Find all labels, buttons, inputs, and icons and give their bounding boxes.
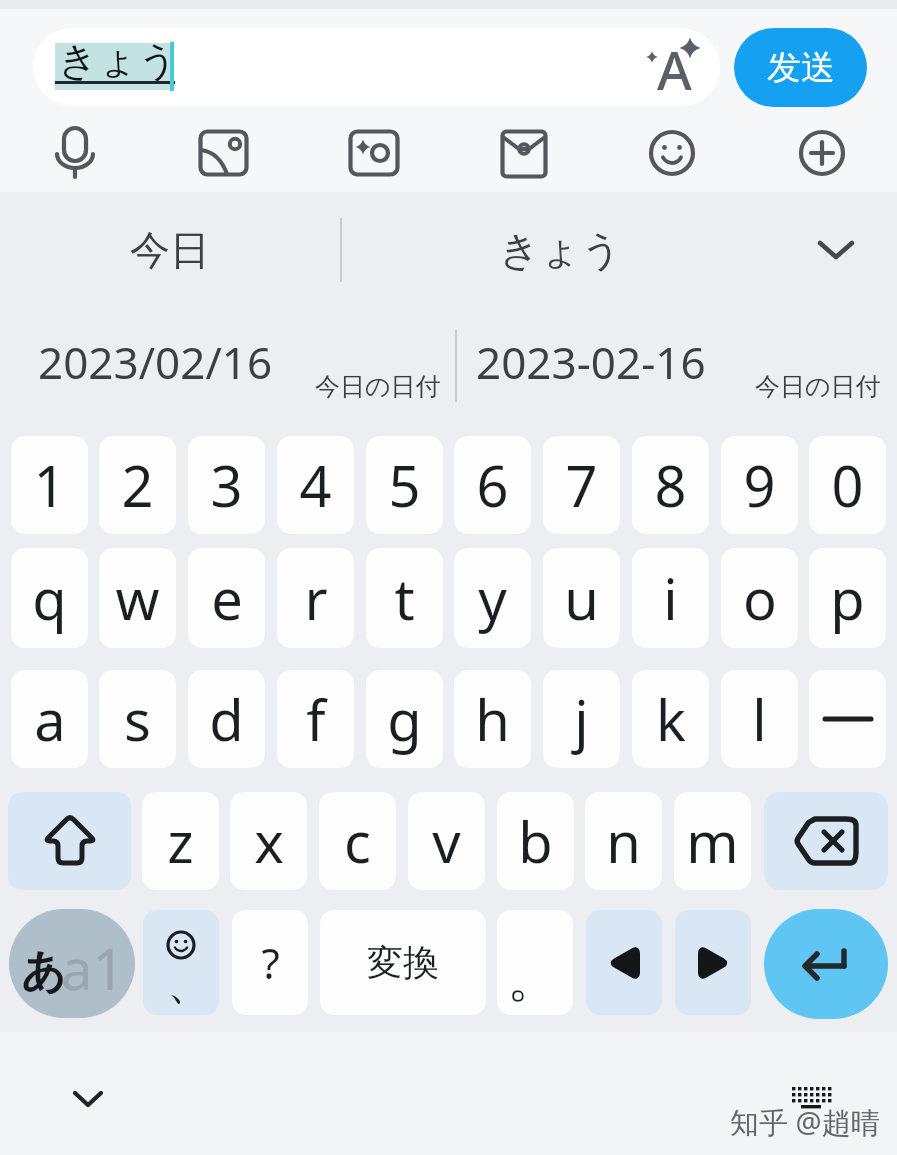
button[interactable]: t [366, 548, 443, 648]
staticText: l [752, 681, 767, 757]
button[interactable]: m [674, 792, 751, 890]
staticText: ? [261, 934, 280, 991]
button[interactable] [496, 126, 552, 180]
staticText: b [518, 803, 553, 879]
button[interactable]: n [585, 792, 662, 890]
button[interactable] [809, 670, 886, 768]
button[interactable]: 8 [632, 436, 709, 534]
staticText: y [478, 560, 507, 636]
button[interactable]: 4 [277, 436, 354, 534]
button[interactable]: p [809, 548, 886, 648]
button[interactable] [764, 792, 888, 890]
staticText: k [656, 681, 686, 757]
staticText: c [344, 803, 371, 879]
button[interactable]: きょう [420, 205, 700, 295]
button[interactable] [764, 909, 888, 1019]
button[interactable]: r [277, 548, 354, 648]
staticText: 3 [210, 447, 243, 523]
staticText: a1 [61, 930, 125, 1006]
staticText: 6 [476, 447, 509, 523]
button[interactable] [780, 1075, 840, 1115]
staticText: t [394, 560, 415, 636]
staticText: 今日の日付 [315, 371, 441, 402]
staticText: 。 [507, 946, 559, 1012]
button[interactable]: 6 [454, 436, 531, 534]
staticText: 9 [743, 447, 776, 523]
button[interactable]: 2 [99, 436, 176, 534]
button[interactable]: g [366, 670, 443, 768]
staticText: j [574, 681, 589, 757]
button[interactable]: s [99, 670, 176, 768]
button[interactable] [800, 215, 870, 285]
button[interactable]: 変換 [320, 910, 486, 1015]
button[interactable] [344, 126, 404, 180]
button[interactable] [675, 910, 751, 1015]
button[interactable]: 今日 [30, 205, 310, 295]
staticText: q [32, 560, 67, 636]
button[interactable]: 3 [188, 436, 265, 534]
staticText: あ [21, 944, 67, 999]
staticText: i [663, 560, 678, 636]
button[interactable]: a [11, 670, 88, 768]
button[interactable]: h [454, 670, 531, 768]
staticText: w [115, 560, 160, 636]
button[interactable]: v [408, 792, 485, 890]
button[interactable] [586, 910, 662, 1015]
staticText: d [209, 681, 244, 757]
staticText: きょう [58, 36, 178, 85]
staticText: 4 [299, 447, 332, 523]
button[interactable]: j [543, 670, 620, 768]
staticText: 知乎 @趙晴 [730, 1102, 880, 1142]
button[interactable]: u [543, 548, 620, 648]
staticText: 2023-02-16 [476, 332, 706, 392]
button[interactable]: 0 [809, 436, 886, 534]
button[interactable]: あ [9, 909, 135, 1018]
button[interactable]: 、 [143, 910, 219, 1015]
staticText: o [743, 560, 777, 636]
button[interactable] [194, 125, 254, 181]
button[interactable]: z [142, 792, 219, 890]
staticText: 2023/02/16 [38, 332, 273, 392]
staticText: 2 [121, 447, 154, 523]
button[interactable]: b [497, 792, 574, 890]
staticText: v [432, 803, 461, 879]
button[interactable]: y [454, 548, 531, 648]
button[interactable]: 1 [11, 436, 88, 534]
staticText: p [830, 560, 865, 636]
staticText: x [254, 803, 284, 879]
staticText: 今日 [130, 225, 210, 275]
button[interactable]: 7 [543, 436, 620, 534]
button[interactable]: i [632, 548, 709, 648]
staticText: e [211, 560, 243, 636]
button[interactable] [58, 1070, 118, 1130]
button[interactable]: c [319, 792, 396, 890]
button[interactable]: o [721, 548, 798, 648]
button[interactable]: w [99, 548, 176, 648]
staticText: 、 [167, 956, 211, 1011]
button[interactable]: x [230, 792, 307, 890]
staticText: きょう [499, 225, 622, 275]
button[interactable] [645, 126, 701, 180]
button[interactable]: f [277, 670, 354, 768]
button[interactable]: d [188, 670, 265, 768]
button[interactable] [8, 792, 131, 890]
button[interactable]: 5 [366, 436, 443, 534]
button[interactable]: ? [232, 910, 308, 1015]
staticText: 5 [388, 447, 421, 523]
button[interactable]: 发送 [734, 28, 867, 107]
staticText: A [657, 33, 692, 105]
button[interactable]: きょう [33, 28, 720, 106]
staticText: a [34, 681, 66, 757]
button[interactable]: l [721, 670, 798, 768]
staticText: r [304, 560, 328, 636]
button[interactable]: 9 [721, 436, 798, 534]
button[interactable]: q [11, 548, 88, 648]
button[interactable]: k [632, 670, 709, 768]
button[interactable] [45, 123, 105, 183]
button[interactable]: 。 [497, 910, 573, 1015]
button[interactable]: 2023/02/16 [20, 315, 445, 420]
staticText: 0 [831, 447, 864, 523]
button[interactable]: e [188, 548, 265, 648]
button[interactable]: 2023-02-16 [458, 315, 883, 420]
button[interactable] [795, 126, 851, 180]
